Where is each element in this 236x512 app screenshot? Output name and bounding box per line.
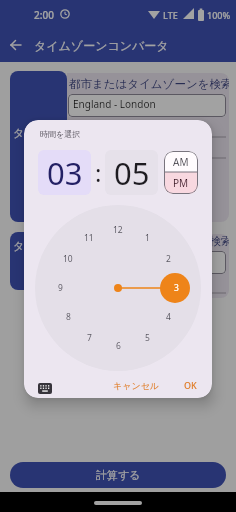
button[interactable]: OK bbox=[176, 374, 204, 396]
button[interactable] bbox=[68, 251, 226, 274]
staticText: 7 bbox=[87, 332, 92, 344]
staticText: England - London bbox=[73, 97, 156, 111]
staticText: タイムゾーン 2 bbox=[13, 238, 67, 253]
button[interactable] bbox=[68, 119, 226, 137]
staticText: PM bbox=[173, 176, 189, 190]
staticText: 計算する bbox=[96, 468, 141, 482]
staticText: 03 bbox=[47, 152, 83, 194]
button[interactable]: キャンセル bbox=[110, 374, 162, 396]
button[interactable]: 4 bbox=[159, 308, 177, 326]
staticText: 2:00 bbox=[34, 8, 54, 22]
button[interactable]: AM bbox=[164, 151, 198, 172]
staticText: 9 bbox=[58, 282, 63, 294]
staticText: LTE bbox=[163, 9, 178, 21]
button[interactable]: England - London bbox=[68, 94, 226, 117]
button[interactable]: 9 bbox=[51, 279, 69, 297]
button[interactable]: 計算する bbox=[10, 462, 226, 488]
staticText: 11 bbox=[84, 232, 94, 244]
staticText: タイムゾーンコンバータ bbox=[34, 38, 169, 53]
button[interactable]: 6 bbox=[109, 337, 127, 355]
button[interactable] bbox=[68, 139, 226, 158]
staticText: OK bbox=[184, 379, 197, 391]
staticText: 8 bbox=[66, 311, 71, 323]
button[interactable]: 12 bbox=[109, 221, 127, 239]
staticText: 05 bbox=[114, 152, 150, 194]
button[interactable]: 2 bbox=[159, 250, 177, 268]
staticText: 6 bbox=[116, 340, 121, 352]
button[interactable]: 3 bbox=[167, 279, 185, 297]
button[interactable]: 5 bbox=[138, 329, 156, 347]
button[interactable] bbox=[8, 37, 24, 53]
staticText: 5 bbox=[145, 332, 150, 344]
staticText: 1 bbox=[145, 232, 150, 244]
button[interactable]: 11 bbox=[80, 229, 98, 247]
button[interactable]: 7 bbox=[80, 329, 98, 347]
staticText: 都市またはタイムゾーンを検索 bbox=[69, 234, 229, 248]
button[interactable]: 8 bbox=[59, 308, 77, 326]
staticText: タイムゾーン 1 bbox=[13, 125, 67, 140]
button[interactable] bbox=[34, 380, 56, 396]
button[interactable]: 03 bbox=[38, 150, 91, 195]
staticText: 12 bbox=[113, 224, 123, 236]
staticText: 4 bbox=[166, 311, 171, 323]
staticText: 2 bbox=[166, 253, 171, 265]
staticText: キャンセル bbox=[113, 380, 160, 391]
staticText: 3 bbox=[174, 282, 179, 294]
button[interactable]: 10 bbox=[59, 250, 77, 268]
button[interactable]: 05 bbox=[105, 150, 158, 195]
button[interactable]: 1 bbox=[138, 229, 156, 247]
staticText: AM bbox=[173, 155, 189, 169]
staticText: 都市またはタイムゾーンを検索 bbox=[69, 77, 229, 91]
staticText: 10 bbox=[63, 253, 73, 265]
staticText: : bbox=[95, 156, 102, 189]
button[interactable]: PM bbox=[164, 172, 198, 194]
staticText: 100% bbox=[207, 9, 231, 21]
staticText: 時間を選択 bbox=[40, 129, 81, 139]
